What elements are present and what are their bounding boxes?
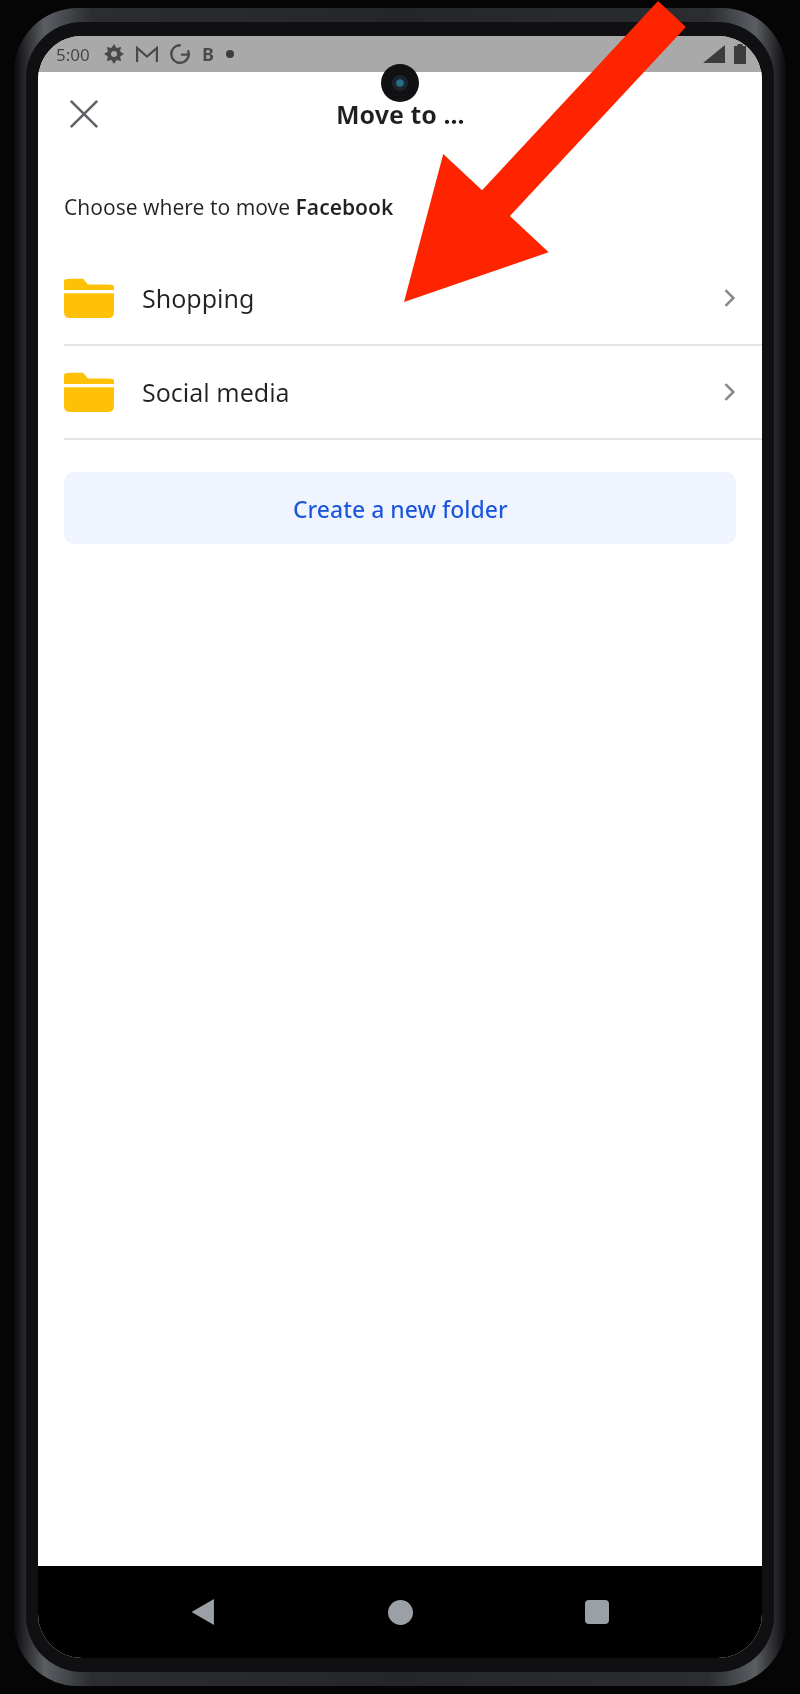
staticText: Move to ...	[336, 97, 465, 131]
button[interactable]: Social media	[38, 346, 762, 438]
button[interactable]: Shopping	[38, 252, 762, 344]
staticText: Shopping	[142, 281, 255, 315]
staticText: B	[202, 42, 214, 67]
staticText: Social media	[142, 375, 290, 409]
staticText: Choose where to move Facebook	[64, 193, 394, 222]
staticText: Create a new folder	[293, 493, 508, 524]
button[interactable]: Create a new folder	[64, 472, 736, 544]
button[interactable]: Back	[171, 1580, 235, 1644]
button[interactable]: Recent apps	[565, 1580, 629, 1644]
button[interactable]: Close	[58, 88, 110, 140]
button[interactable]: Home	[368, 1580, 432, 1644]
staticText: 5:00	[56, 43, 90, 66]
